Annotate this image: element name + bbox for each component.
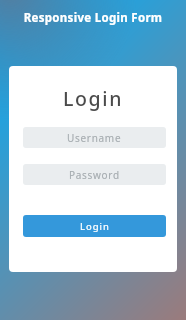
button[interactable]: Password	[23, 164, 166, 185]
staticText: Login	[80, 220, 110, 233]
staticText: Responsive Login Form	[0, 10, 186, 26]
staticText: Username	[67, 131, 122, 145]
button[interactable]: Username	[23, 127, 166, 148]
button[interactable]: Login	[23, 215, 166, 237]
staticText: Login	[9, 85, 177, 112]
staticText: Password	[69, 168, 120, 182]
